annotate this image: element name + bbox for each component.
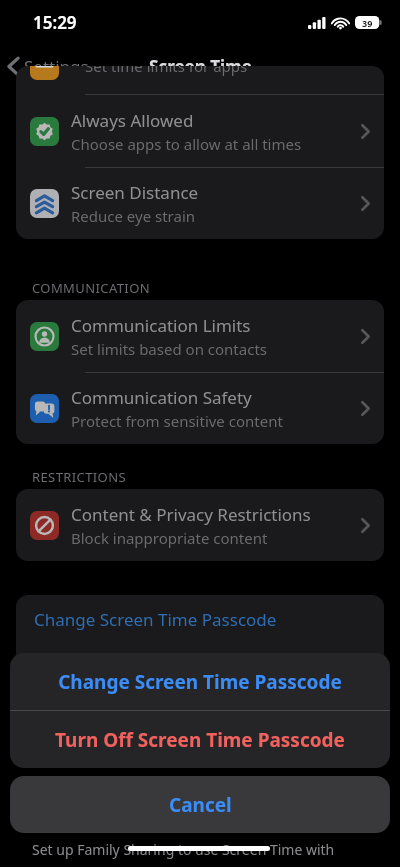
button[interactable]: Always Allowed <box>16 95 384 167</box>
staticText: Set time limits for apps <box>85 66 248 76</box>
staticText: Set limits based on contacts <box>71 339 267 359</box>
staticText: Screen Time <box>149 55 252 78</box>
button[interactable]: Content & Privacy Restrictions <box>16 489 384 561</box>
staticText: Change Screen Time Passcode <box>58 669 342 695</box>
button[interactable]: Change Screen Time Passcode <box>10 653 390 710</box>
staticText: Always Allowed <box>71 109 194 132</box>
staticText: Protect from sensitive content <box>71 411 283 431</box>
staticText: Screen Distance <box>71 181 199 204</box>
button[interactable]: Cancel <box>10 776 390 833</box>
staticText: 15:29 <box>33 11 77 34</box>
staticText: 39 <box>362 17 373 29</box>
staticText: COMMUNICATION <box>32 279 150 297</box>
button[interactable]: Communication Limits <box>16 300 384 372</box>
staticText: Reduce eye strain <box>71 206 196 226</box>
staticText: Block inappropriate content <box>71 528 268 548</box>
staticText: Change Screen Time Passcode <box>34 608 277 631</box>
staticText: Communication Limits <box>71 314 251 337</box>
staticText: Choose apps to allow at all times <box>71 134 302 154</box>
staticText: Set up Family Sharing to use Screen Time… <box>32 840 335 859</box>
staticText: RESTRICTIONS <box>32 468 126 486</box>
staticText: Communication Safety <box>71 386 252 409</box>
staticText: Turn Off Screen Time Passcode <box>55 727 345 753</box>
staticText: Cancel <box>169 792 232 818</box>
button[interactable]: Change Screen Time Passcode <box>16 595 384 689</box>
staticText: Settings <box>24 55 89 78</box>
button[interactable]: Settings <box>0 49 99 84</box>
staticText: Content & Privacy Restrictions <box>71 503 311 526</box>
button[interactable]: Screen Distance <box>16 168 384 239</box>
button[interactable]: Communication Safety <box>16 373 384 444</box>
button[interactable]: Turn Off Screen Time Passcode <box>10 711 390 768</box>
